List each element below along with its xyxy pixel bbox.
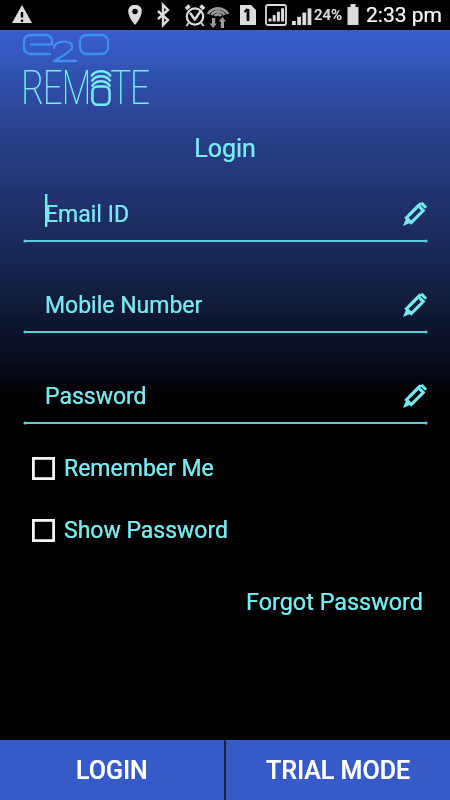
button[interactable]: TRIAL MODE (226, 740, 450, 800)
staticText: 24% (314, 6, 343, 24)
button[interactable]: Edit (400, 290, 430, 320)
staticText: 2:33 pm (366, 3, 442, 28)
staticText: TRIAL MODE (266, 756, 411, 785)
button[interactable]: LOGIN (0, 740, 224, 800)
button[interactable]: Mobile Number (0, 283, 450, 327)
button[interactable]: Edit (400, 381, 430, 411)
button[interactable]: Email ID (0, 192, 450, 236)
staticText: LOGIN (76, 756, 148, 785)
staticText: TE (110, 59, 149, 115)
staticText: Login (194, 134, 256, 163)
staticText: Show Password (64, 517, 229, 544)
staticText: Email ID (45, 201, 129, 228)
staticText: Remember Me (64, 455, 214, 482)
button[interactable]: Remember Me (0, 451, 450, 485)
staticText: REM (21, 59, 91, 115)
button[interactable]: Show Password (0, 513, 450, 547)
button[interactable]: Forgot Password (240, 583, 429, 620)
staticText: Password (45, 383, 147, 410)
staticText: Mobile Number (45, 292, 203, 319)
button[interactable]: Password (0, 374, 450, 418)
button[interactable]: Edit (400, 199, 430, 229)
staticText: Forgot Password (246, 588, 423, 615)
